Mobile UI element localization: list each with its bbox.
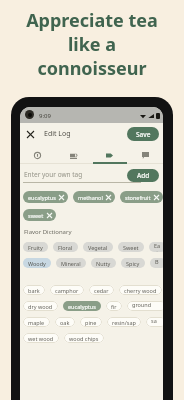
button[interactable]: sawdust (146, 317, 163, 327)
button[interactable]: stonefruit (120, 191, 163, 203)
staticText: Spicy (126, 260, 140, 267)
button[interactable]: Vegetal (83, 242, 113, 252)
staticText: wet wood (28, 335, 54, 342)
staticText: Woody (28, 260, 46, 267)
staticText: Sweet (123, 244, 139, 251)
button[interactable]: bark (23, 285, 45, 295)
staticText: pine (85, 319, 97, 326)
button[interactable]: Mineral (56, 258, 86, 268)
staticText: Floral (58, 244, 73, 251)
staticText: Enter your own tag (24, 170, 83, 179)
staticText: Save (136, 130, 151, 139)
button[interactable]: methanol (73, 191, 115, 203)
staticText: eucalyptus (68, 303, 96, 310)
button[interactable]: dry wood (23, 301, 58, 311)
button[interactable]: cherry wood (119, 285, 162, 295)
button[interactable]: cedar (89, 285, 114, 295)
staticText: Fruity (28, 244, 43, 251)
staticText: Flavor Dictionary (24, 228, 72, 236)
staticText: Nutty (96, 260, 111, 267)
button[interactable]: Sweet (118, 242, 144, 252)
button[interactable]: ground coffee (127, 301, 163, 311)
button[interactable]: eucalyptus (23, 191, 68, 203)
button[interactable]: Close (23, 127, 37, 141)
button[interactable]: Nutty (91, 258, 116, 268)
button[interactable]: wet wood (23, 333, 59, 343)
button[interactable]: resin/sap (107, 317, 141, 327)
button[interactable]: Fruity (23, 242, 48, 252)
button[interactable]: Details (20, 147, 55, 163)
staticText: Earthy (154, 242, 161, 252)
button[interactable]: Add (127, 169, 159, 182)
staticText: methanol (78, 194, 103, 201)
staticText: bark (28, 287, 40, 294)
staticText: camphor (55, 287, 79, 294)
button[interactable]: Save (127, 127, 159, 141)
staticText: eucalyptus (28, 194, 56, 201)
staticText: wood chips (69, 335, 99, 342)
staticText: 9:09 (39, 112, 51, 120)
staticText: Burnt (155, 258, 161, 268)
button[interactable]: Woody (23, 258, 51, 268)
button[interactable]: sweet (23, 209, 56, 221)
staticText: sawdust (151, 317, 161, 327)
staticText: Mineral (61, 260, 81, 267)
button[interactable]: Floral (53, 242, 78, 252)
staticText: fir (111, 303, 117, 310)
staticText: sweet (28, 212, 44, 219)
staticText: maple (28, 319, 45, 326)
staticText: Appreciate tea like a connoisseur (6, 8, 178, 80)
staticText: oak (60, 319, 70, 326)
button[interactable]: Spicy (121, 258, 145, 268)
staticText: cedar (94, 287, 109, 294)
button[interactable]: Flavor (91, 147, 127, 163)
button[interactable]: Burnt (150, 258, 163, 268)
button[interactable]: wood chips (64, 333, 104, 343)
staticText: resin/sap (112, 319, 136, 326)
button[interactable]: Brew (55, 147, 91, 163)
staticText: ground coffee (132, 301, 161, 311)
button[interactable]: Earthy (149, 242, 163, 252)
staticText: Vegetal (88, 244, 108, 251)
button[interactable]: maple (23, 317, 50, 327)
staticText: stonefruit (125, 194, 151, 201)
staticText: dry wood (28, 303, 53, 310)
staticText: Edit Log (44, 129, 71, 139)
button[interactable]: pine (80, 317, 102, 327)
staticText: cherry wood (124, 287, 157, 294)
button[interactable]: camphor (50, 285, 84, 295)
button[interactable]: eucalyptus (63, 301, 101, 311)
button[interactable]: Notes (127, 147, 163, 163)
button[interactable]: oak (55, 317, 75, 327)
staticText: Add (137, 171, 150, 180)
button[interactable]: fir (106, 301, 122, 311)
